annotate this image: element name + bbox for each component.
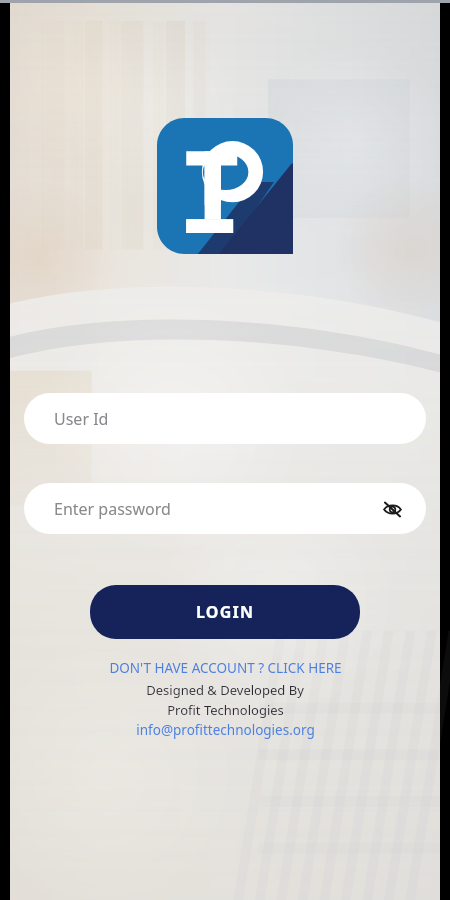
button[interactable]: LOGIN bbox=[90, 585, 360, 639]
staticText: Profit Technologies bbox=[167, 701, 284, 719]
staticText: info@profittechnologies.org bbox=[136, 721, 315, 739]
staticText: Enter password bbox=[54, 498, 376, 520]
button[interactable]: Show password bbox=[376, 493, 408, 525]
button[interactable]: Enter password bbox=[24, 483, 426, 534]
staticText: User Id bbox=[54, 408, 109, 430]
staticText: LOGIN bbox=[196, 601, 255, 623]
button[interactable]: info@profittechnologies.org bbox=[136, 721, 315, 739]
staticText: DON'T HAVE ACCOUNT ? CLICK HERE bbox=[109, 659, 342, 677]
button[interactable]: DON'T HAVE ACCOUNT ? CLICK HERE bbox=[40, 659, 410, 677]
button[interactable]: User Id bbox=[24, 393, 426, 444]
staticText: Designed & Developed By bbox=[146, 681, 304, 699]
